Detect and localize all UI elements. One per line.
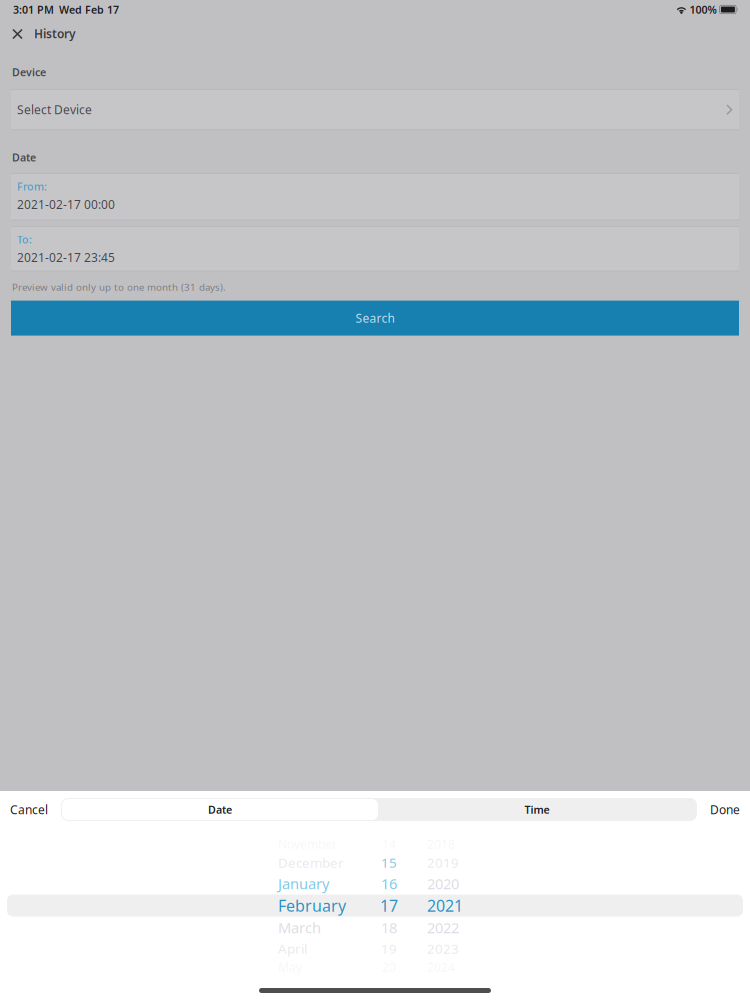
- staticText: 100%: [690, 2, 717, 17]
- button[interactable]: Done: [702, 794, 747, 824]
- staticText: Time: [524, 802, 549, 817]
- staticText: Search: [355, 310, 394, 326]
- button[interactable]: From:: [11, 173, 739, 220]
- staticText: 16: [381, 874, 397, 893]
- button[interactable]: Cancel: [2, 794, 56, 824]
- staticText: 18: [381, 918, 397, 937]
- staticText: 2020: [427, 874, 459, 893]
- staticText: History: [34, 25, 76, 41]
- staticText: Select Device: [17, 102, 92, 118]
- staticText: Date: [12, 150, 36, 164]
- staticText: 2019: [427, 854, 459, 871]
- button[interactable]: Time: [378, 799, 696, 820]
- button[interactable]: Search: [11, 301, 739, 336]
- staticText: 15: [381, 854, 397, 871]
- staticText: 17: [380, 895, 398, 916]
- staticText: January: [278, 874, 329, 893]
- staticText: April: [278, 940, 307, 957]
- staticText: 2022: [427, 918, 459, 937]
- staticText: 2021: [427, 895, 463, 916]
- staticText: 2021-02-17 23:45: [17, 249, 115, 265]
- staticText: Preview valid only up to one month (31 d…: [12, 280, 226, 294]
- button[interactable]: History: [30, 19, 82, 47]
- staticText: March: [278, 918, 321, 937]
- staticText: December: [278, 854, 344, 871]
- button[interactable]: To:: [11, 226, 739, 271]
- staticText: From:: [17, 179, 47, 193]
- staticText: 19: [381, 940, 397, 957]
- staticText: February: [278, 895, 346, 916]
- button[interactable]: Close: [5, 21, 30, 45]
- staticText: To:: [17, 232, 32, 246]
- staticText: Device: [12, 65, 46, 79]
- staticText: 2023: [427, 940, 459, 957]
- staticText: Done: [710, 801, 740, 817]
- staticText: Wed Feb 17: [59, 2, 119, 17]
- staticText: 2021-02-17 00:00: [17, 196, 115, 212]
- staticText: Cancel: [10, 801, 48, 817]
- staticText: 3:01 PM: [13, 2, 54, 17]
- button[interactable]: Date: [62, 799, 378, 820]
- staticText: Date: [208, 802, 232, 817]
- button[interactable]: Select Device: [11, 89, 739, 130]
